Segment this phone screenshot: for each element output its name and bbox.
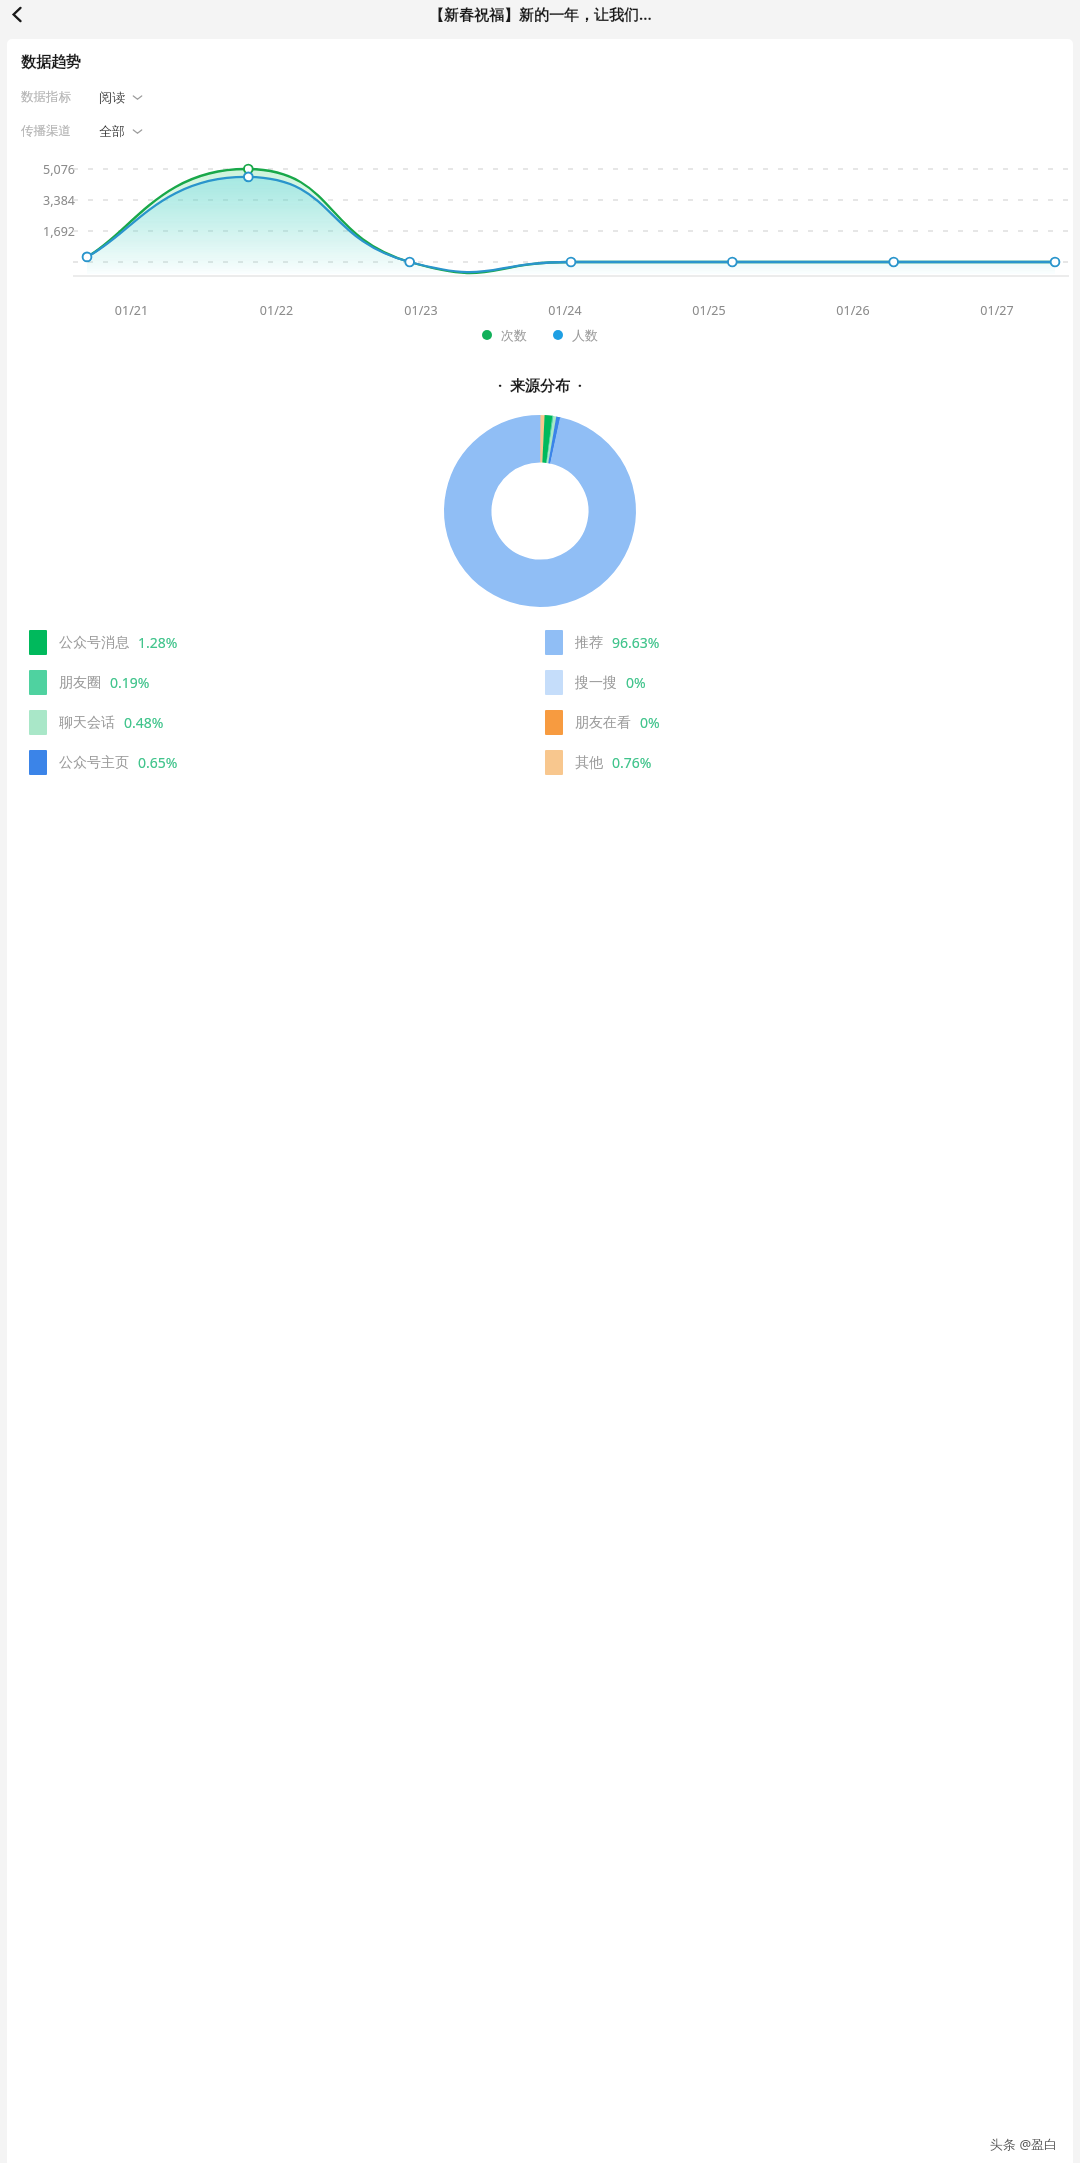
- button[interactable]: 朋友在看: [545, 710, 1061, 735]
- staticText: 全部: [99, 123, 125, 139]
- staticText: 数据趋势: [21, 53, 81, 72]
- staticText: 数据指标: [21, 89, 71, 105]
- staticText: 0.76%: [612, 753, 652, 772]
- staticText: 01/24: [493, 302, 637, 319]
- staticText: 次数: [501, 327, 527, 343]
- button[interactable]: 次数: [482, 327, 527, 343]
- staticText: 01/27: [925, 302, 1069, 319]
- staticText: 0.48%: [124, 713, 164, 732]
- staticText: 头条 @盈白: [990, 2135, 1058, 2153]
- staticText: 阅读: [99, 89, 125, 105]
- staticText: 人数: [572, 327, 598, 343]
- staticText: 朋友在看: [575, 714, 631, 732]
- staticText: 聊天会话: [59, 714, 115, 732]
- button[interactable]: Back: [5, 2, 29, 26]
- staticText: 3,384: [7, 192, 75, 209]
- staticText: 0%: [640, 713, 660, 732]
- button[interactable]: 搜一搜: [545, 670, 1061, 695]
- staticText: 传播渠道: [21, 123, 71, 139]
- button[interactable]: 公众号消息: [29, 630, 545, 655]
- button[interactable]: 聊天会话: [29, 710, 545, 735]
- staticText: 搜一搜: [575, 674, 617, 692]
- staticText: 公众号消息: [59, 634, 129, 652]
- staticText: 其他: [575, 754, 603, 772]
- button[interactable]: 朋友圈: [29, 670, 545, 695]
- button[interactable]: 人数: [553, 327, 598, 343]
- button[interactable]: 其他: [545, 750, 1061, 775]
- staticText: 01/22: [204, 302, 349, 319]
- staticText: 1.28%: [138, 633, 178, 652]
- staticText: 01/26: [781, 302, 925, 319]
- staticText: 0.19%: [110, 673, 150, 692]
- staticText: 01/23: [349, 302, 493, 319]
- button[interactable]: 公众号主页: [29, 750, 545, 775]
- staticText: 01/25: [637, 302, 781, 319]
- button[interactable]: 阅读: [99, 89, 143, 105]
- staticText: 01/21: [59, 302, 204, 319]
- staticText: 1,692: [7, 223, 75, 240]
- staticText: 0%: [626, 673, 646, 692]
- button[interactable]: 全部: [99, 123, 143, 139]
- staticText: 0.65%: [138, 753, 178, 772]
- staticText: 【新春祝福】新的一年，让我们...: [429, 4, 652, 24]
- staticText: 96.63%: [612, 633, 660, 652]
- staticText: · 来源分布 ·: [7, 375, 1073, 395]
- staticText: 5,076: [7, 161, 75, 178]
- staticText: 推荐: [575, 634, 603, 652]
- staticText: 朋友圈: [59, 674, 101, 692]
- button[interactable]: 推荐: [545, 630, 1061, 655]
- staticText: 公众号主页: [59, 754, 129, 772]
